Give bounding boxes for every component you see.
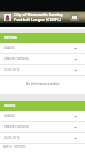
staticText: RESULTS <box>4 104 16 108</box>
staticText: No information available <box>26 82 60 86</box>
staticText: MATCH REPORTS <box>3 145 26 149</box>
button[interactable]: SENIOR DIVISION <box>0 122 85 132</box>
staticText: SENIOR DIVISION <box>4 125 29 129</box>
button[interactable]: 20-05-2016 <box>0 133 85 143</box>
button[interactable]: LEAGUE <box>0 43 85 53</box>
button[interactable]: RESULTS <box>0 101 85 111</box>
button[interactable]: FIXTURES <box>0 33 85 43</box>
button[interactable]: 20-05-2016 <box>0 65 85 75</box>
staticText: FIXTURES <box>4 36 17 40</box>
staticText: SENIOR DIVISION <box>4 57 29 61</box>
button[interactable]: Menu <box>70 14 79 21</box>
staticText: LEAGUE <box>4 46 15 50</box>
button[interactable]: LEAGUE <box>0 111 85 121</box>
button[interactable]: SENIOR DIVISION <box>0 54 85 64</box>
staticText: 20-05-2016 <box>4 136 20 140</box>
staticText: 20-05-2016 <box>4 68 20 72</box>
staticText: LEAGUE <box>4 114 15 118</box>
staticText: City of Newcastle Sunday Football League… <box>14 12 63 22</box>
